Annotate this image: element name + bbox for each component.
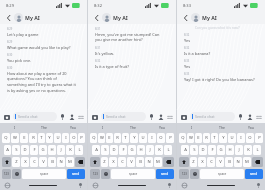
button[interactable]: W <box>11 133 19 143</box>
button[interactable]: My AI avatar <box>102 13 111 22</box>
button[interactable]: Stickers <box>157 113 164 120</box>
button[interactable]: J <box>146 145 154 155</box>
button[interactable]: C <box>207 157 215 167</box>
button[interactable]: Audio note <box>59 113 66 120</box>
button[interactable]: My AI avatar <box>191 13 200 22</box>
button[interactable]: N <box>234 157 242 167</box>
button[interactable]: H <box>137 145 145 155</box>
button[interactable]: T <box>38 133 45 143</box>
button[interactable]: Shift <box>90 157 100 167</box>
button[interactable]: Backspace <box>252 157 263 167</box>
button[interactable]: F <box>208 145 216 155</box>
button[interactable]: My AI avatar <box>14 13 23 22</box>
button[interactable]: Z <box>190 157 197 167</box>
button[interactable]: space <box>22 169 66 179</box>
button[interactable]: Z <box>12 157 20 167</box>
button[interactable]: M <box>66 157 74 167</box>
button[interactable]: R <box>29 133 37 143</box>
button[interactable]: U <box>54 133 61 143</box>
button[interactable]: E <box>106 133 113 143</box>
button[interactable]: Backspace <box>75 157 85 167</box>
button[interactable]: Camera <box>3 113 11 121</box>
button[interactable]: A <box>4 145 11 155</box>
button[interactable]: The <box>118 123 147 132</box>
button[interactable]: Stickers <box>246 113 253 120</box>
button[interactable]: Back <box>93 14 101 22</box>
button[interactable]: P <box>78 133 85 143</box>
button[interactable]: C <box>30 157 38 167</box>
button[interactable]: Change keyboard <box>181 182 187 188</box>
button[interactable]: I <box>88 123 118 132</box>
button[interactable]: W <box>98 133 105 143</box>
button[interactable]: X <box>109 157 117 167</box>
button[interactable]: Y <box>46 133 53 143</box>
button[interactable]: Audio note <box>237 113 244 120</box>
button[interactable]: P <box>255 133 263 143</box>
button[interactable]: K <box>244 145 252 155</box>
button[interactable]: More options <box>166 113 173 120</box>
button[interactable]: H <box>48 145 56 155</box>
button[interactable]: space <box>111 169 155 179</box>
button[interactable]: L <box>253 145 261 155</box>
button[interactable]: I <box>148 133 156 143</box>
button[interactable]: space <box>200 169 244 179</box>
button[interactable]: W <box>187 133 194 143</box>
button[interactable]: V <box>216 157 224 167</box>
button[interactable]: Q <box>2 133 10 143</box>
button[interactable]: I <box>237 133 245 143</box>
button[interactable]: You <box>147 123 176 132</box>
button[interactable]: 123 <box>179 169 189 179</box>
button[interactable]: U <box>228 133 236 143</box>
button[interactable]: More options <box>77 113 84 120</box>
button[interactable]: N <box>145 157 153 167</box>
button[interactable]: T <box>122 133 129 143</box>
button[interactable]: Dictation <box>255 182 261 188</box>
button[interactable]: J <box>235 145 243 155</box>
button[interactable]: Shift <box>179 157 189 167</box>
button[interactable]: You <box>236 123 265 132</box>
button[interactable]: X <box>198 157 206 167</box>
button[interactable]: Camera <box>91 113 99 121</box>
button[interactable]: I <box>177 123 207 132</box>
button[interactable]: 123 <box>90 169 100 179</box>
button[interactable]: More options <box>255 113 262 120</box>
button[interactable]: A <box>92 145 100 155</box>
button[interactable]: Q <box>90 133 97 143</box>
button[interactable]: S <box>12 145 20 155</box>
button[interactable]: Dictation <box>77 182 83 188</box>
button[interactable]: M <box>243 157 251 167</box>
button[interactable]: B <box>136 157 144 167</box>
button[interactable]: K <box>66 145 74 155</box>
button[interactable]: P <box>166 133 174 143</box>
button[interactable]: Y <box>219 133 227 143</box>
button[interactable]: D <box>21 145 29 155</box>
button[interactable]: S <box>101 145 109 155</box>
button[interactable]: U <box>139 133 147 143</box>
button[interactable]: O <box>157 133 165 143</box>
button[interactable]: The <box>29 123 58 132</box>
button[interactable]: send <box>156 169 174 179</box>
button[interactable]: I <box>62 133 69 143</box>
button[interactable]: Backspace <box>163 157 174 167</box>
button[interactable]: Dictation <box>166 182 172 188</box>
button[interactable]: Change keyboard <box>92 182 98 188</box>
button[interactable]: R <box>114 133 121 143</box>
button[interactable]: D <box>110 145 118 155</box>
button[interactable]: Stickers <box>68 113 75 120</box>
button[interactable]: B <box>48 157 56 167</box>
button[interactable]: G <box>217 145 225 155</box>
button[interactable]: send <box>245 169 263 179</box>
button[interactable]: M <box>154 157 162 167</box>
button[interactable]: Emoji <box>101 169 110 179</box>
button[interactable]: Shift <box>2 157 11 167</box>
button[interactable]: C <box>118 157 126 167</box>
button[interactable]: F <box>119 145 127 155</box>
button[interactable]: send <box>67 169 85 179</box>
button[interactable]: Send a chat <box>190 112 235 121</box>
button[interactable]: Q <box>179 133 186 143</box>
button[interactable]: F <box>30 145 38 155</box>
button[interactable]: L <box>75 145 83 155</box>
button[interactable]: X <box>21 157 29 167</box>
button[interactable]: E <box>20 133 28 143</box>
button[interactable]: S <box>190 145 198 155</box>
